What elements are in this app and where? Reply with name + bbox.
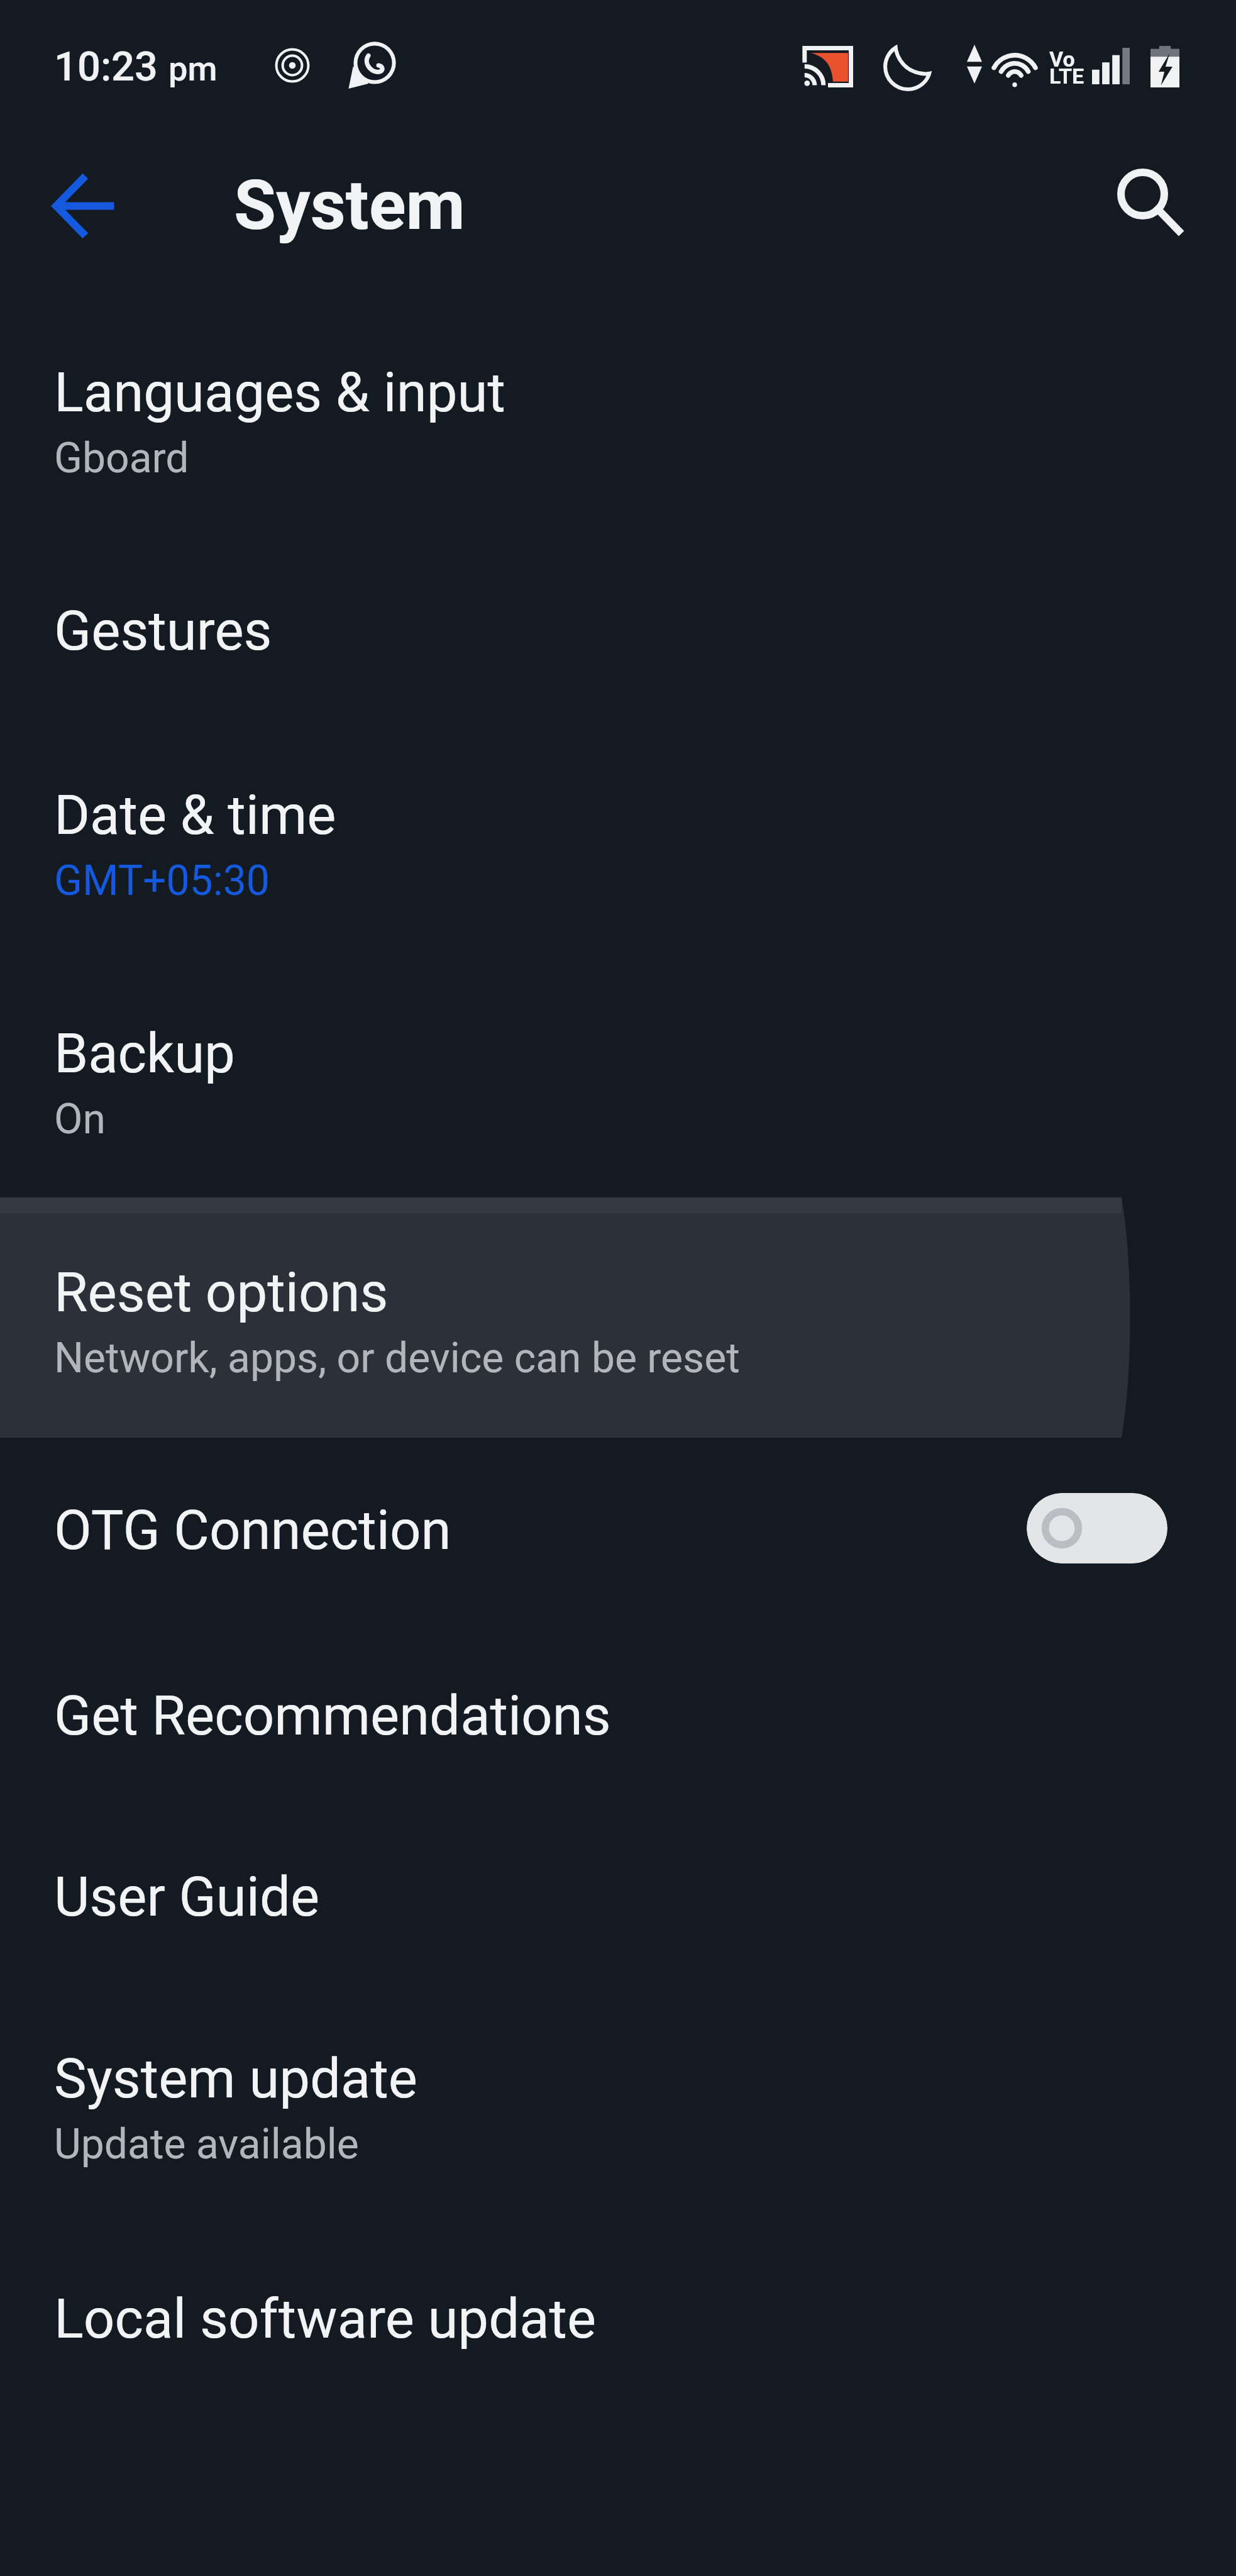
button[interactable]: System update [0,1984,1236,2224]
staticText: Reset options [54,1260,389,1324]
staticText: LTE [1049,64,1084,89]
staticText: 10:23 [54,43,158,91]
button[interactable]: Search [1108,158,1196,246]
button[interactable]: Date & time [0,720,1236,960]
button[interactable]: OTG Connection [0,1439,1236,1621]
staticText: User Guide [54,1865,320,1929]
staticText: Gboard [54,434,189,482]
staticText: Update available [54,2120,359,2168]
button[interactable]: Get Recommendations [0,1623,1236,1805]
staticText: Get Recommendations [54,1684,611,1748]
staticText: On [54,1095,106,1143]
staticText: System update [54,2046,417,2111]
staticText: Languages & input [54,360,506,425]
button[interactable]: Back [43,165,125,247]
staticText: Backup [54,1021,235,1085]
staticText: GMT+05:30 [54,857,270,905]
staticText: pm [168,49,218,89]
staticText: Vo [1049,47,1075,72]
button[interactable]: Languages & input [0,297,1236,538]
staticText: Network, apps, or device can be reset [54,1334,740,1382]
button[interactable]: Gestures [0,538,1236,720]
button[interactable]: OTG Connection toggle, off [1027,1493,1167,1563]
button[interactable]: Local software update [0,2226,1236,2408]
staticText: Gestures [54,599,272,663]
staticText: Date & time [54,783,336,847]
staticText: System [234,165,465,246]
staticText: OTG Connection [54,1498,451,1562]
button[interactable]: User Guide [0,1804,1236,1986]
staticText: Local software update [54,2287,597,2351]
button[interactable]: Backup [0,958,1236,1199]
button[interactable]: Reset options [0,1197,1236,1438]
